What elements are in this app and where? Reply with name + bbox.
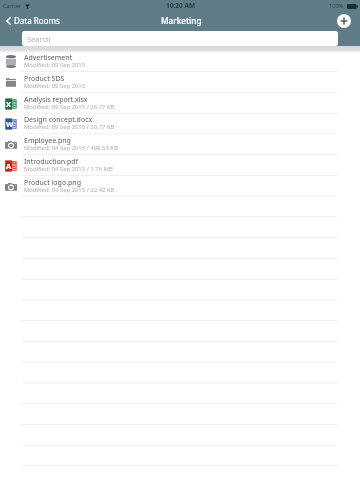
button[interactable]: Add [337, 14, 351, 28]
button[interactable]: Advertisement [0, 51, 360, 72]
staticText: Modified: 04 Sep 2015 / 22.42 KB [24, 186, 115, 194]
staticText: A [6, 161, 12, 171]
staticText: Carrier [3, 2, 22, 10]
button[interactable]: X [0, 93, 360, 114]
staticText: Modified: 04 Sep 2015 / 1.76 MB [24, 165, 113, 173]
staticText: Advertisement [24, 53, 73, 63]
staticText: Modified: 09 Sep 2015 [24, 82, 86, 90]
button[interactable]: Product SDS [0, 72, 360, 93]
button[interactable]: Search [22, 31, 338, 46]
staticText: 100% [329, 2, 344, 10]
staticText: Modified: 09 Sep 2015 [24, 61, 86, 69]
button[interactable]: Data Rooms [0, 12, 68, 29]
staticText: Search [27, 34, 51, 44]
staticText: W [6, 119, 14, 129]
button[interactable]: A [0, 155, 360, 176]
button[interactable]: Product logo.png [0, 176, 360, 197]
staticText: Design concept.docx [24, 115, 93, 125]
button[interactable]: W [0, 113, 360, 134]
staticText: Introduction.pdf [24, 157, 78, 167]
staticText: Analysis report.xlsx [24, 95, 88, 105]
staticText: Data Rooms [14, 15, 60, 26]
staticText: Marketing [161, 15, 202, 26]
staticText: Modified: 04 Sep 2015 / 498.53 KB [24, 144, 118, 152]
staticText: Product SDS [24, 74, 65, 84]
staticText: Product logo.png [24, 178, 81, 188]
staticText: Modified: 09 Sep 2015 / 26.77 KB [24, 103, 115, 111]
staticText: X [6, 99, 12, 109]
staticText: Modified: 09 Sep 2015 / 20.77 KB [24, 123, 115, 131]
staticText: 10:20 AM [166, 1, 196, 10]
staticText: Employee.png [24, 136, 71, 146]
button[interactable]: Employee.png [0, 134, 360, 155]
